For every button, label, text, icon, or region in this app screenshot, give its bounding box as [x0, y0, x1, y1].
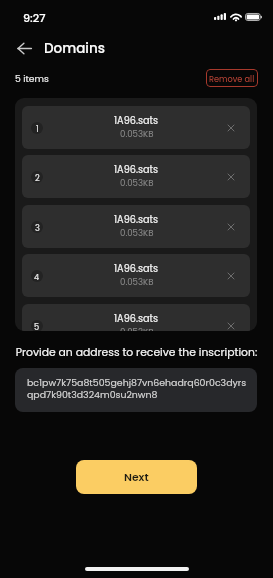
staticText: 1A96.sats [114, 262, 159, 276]
staticText: 2 [35, 172, 40, 183]
staticText: Remove all [209, 73, 255, 84]
staticText: 1A96.sats [114, 114, 159, 128]
staticText: 0.053KB [120, 128, 154, 140]
button[interactable]: 2 [22, 155, 250, 198]
staticText: 5 [34, 321, 40, 331]
button[interactable]: Remove item [222, 267, 240, 285]
button[interactable]: Remove item [222, 119, 240, 137]
staticText: 3 [35, 222, 40, 233]
staticText: 9:27 [23, 10, 46, 26]
staticText: 4 [34, 271, 40, 282]
button[interactable]: Remove all [206, 69, 258, 87]
button[interactable]: Next [76, 460, 197, 494]
staticText: 0.053KB [120, 276, 154, 288]
staticText: 1A96.sats [114, 213, 159, 227]
button[interactable]: Remove item [222, 317, 240, 331]
staticText: 0.053KB [120, 326, 154, 331]
button[interactable]: bc1pw7k75a8t505gehj87vn6ehadrq60r0c3dyrs… [15, 368, 257, 412]
staticText: 1A96.sats [114, 163, 159, 177]
button[interactable]: Back [14, 38, 34, 58]
staticText: bc1pw7k75a8t505gehj87vn6ehadrq60r0c3dyrs… [27, 376, 248, 401]
staticText: 1A96.sats [114, 312, 159, 326]
button[interactable]: Remove item [222, 168, 240, 186]
button[interactable]: 4 [22, 254, 250, 297]
staticText: 0.053KB [120, 227, 154, 239]
staticText: Next [124, 470, 149, 485]
staticText: Domains [44, 39, 105, 58]
button[interactable]: 3 [22, 205, 250, 248]
button[interactable]: 1 [22, 106, 250, 149]
button[interactable]: Remove item [222, 218, 240, 236]
staticText: 5 items [15, 72, 49, 85]
staticText: 1 [36, 123, 39, 134]
button[interactable]: 5 [22, 304, 250, 331]
staticText: Provide an address to receive the inscri… [0, 345, 273, 360]
staticText: 0.053KB [120, 177, 154, 189]
